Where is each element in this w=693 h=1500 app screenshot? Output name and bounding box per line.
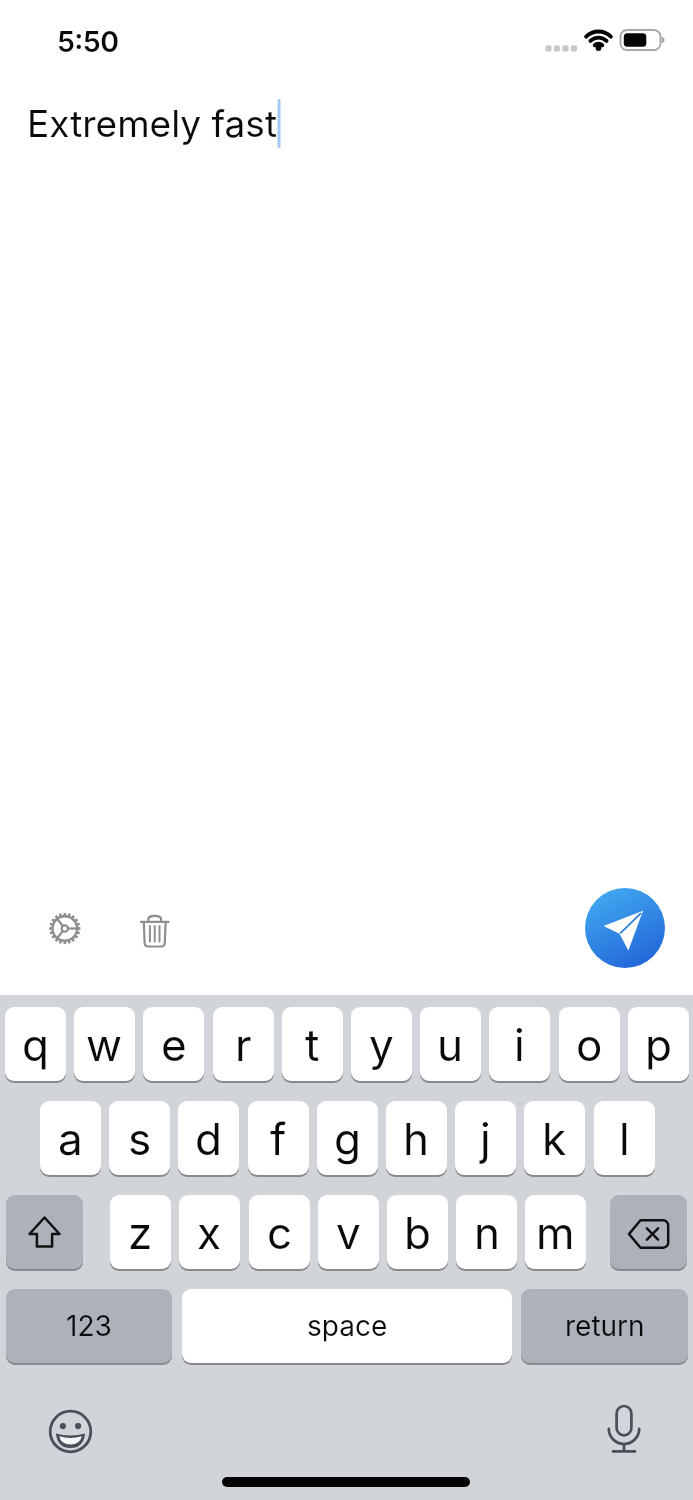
staticText: q bbox=[22, 1018, 49, 1071]
button[interactable]: r bbox=[213, 1007, 274, 1081]
button[interactable]: i bbox=[489, 1007, 550, 1081]
button[interactable] bbox=[599, 1406, 649, 1456]
button[interactable]: t bbox=[282, 1007, 343, 1081]
staticText: s bbox=[128, 1112, 152, 1165]
staticText: Extremely fast bbox=[27, 101, 278, 146]
staticText: r bbox=[235, 1018, 252, 1071]
button[interactable]: return bbox=[521, 1289, 688, 1363]
staticText: e bbox=[161, 1018, 187, 1071]
button[interactable]: d bbox=[178, 1101, 239, 1175]
button[interactable] bbox=[44, 907, 86, 949]
button[interactable]: o bbox=[559, 1007, 620, 1081]
staticText: k bbox=[542, 1112, 567, 1165]
staticText: v bbox=[336, 1206, 361, 1259]
staticText: c bbox=[267, 1206, 293, 1259]
staticText: y bbox=[369, 1018, 394, 1071]
staticText: d bbox=[195, 1112, 222, 1165]
button[interactable] bbox=[6, 1195, 83, 1269]
button[interactable] bbox=[585, 888, 665, 968]
button[interactable]: w bbox=[74, 1007, 135, 1081]
button[interactable]: k bbox=[524, 1101, 585, 1175]
staticText: l bbox=[619, 1112, 630, 1165]
button[interactable]: p bbox=[628, 1007, 689, 1081]
staticText: i bbox=[514, 1018, 525, 1071]
button[interactable]: q bbox=[5, 1007, 66, 1081]
staticText: h bbox=[403, 1112, 430, 1165]
staticText: return bbox=[565, 1309, 645, 1343]
button[interactable]: x bbox=[179, 1195, 240, 1269]
staticText: z bbox=[128, 1206, 153, 1259]
button[interactable] bbox=[46, 1407, 96, 1457]
staticText: b bbox=[404, 1206, 431, 1259]
button[interactable]: m bbox=[525, 1195, 586, 1269]
button[interactable]: g bbox=[317, 1101, 378, 1175]
staticText: f bbox=[270, 1112, 287, 1165]
staticText: w bbox=[86, 1018, 123, 1071]
button[interactable]: a bbox=[40, 1101, 101, 1175]
staticText: p bbox=[645, 1018, 672, 1071]
button[interactable]: c bbox=[249, 1195, 310, 1269]
button[interactable]: z bbox=[110, 1195, 171, 1269]
staticText: a bbox=[58, 1112, 83, 1165]
staticText: g bbox=[334, 1112, 361, 1165]
staticText: 5:50 bbox=[57, 24, 119, 58]
staticText: u bbox=[437, 1018, 464, 1071]
button[interactable]: 123 bbox=[6, 1289, 172, 1363]
staticText: m bbox=[536, 1206, 575, 1259]
button[interactable]: l bbox=[594, 1101, 655, 1175]
staticText: space bbox=[307, 1309, 388, 1343]
button[interactable]: s bbox=[109, 1101, 170, 1175]
staticText: t bbox=[305, 1018, 320, 1071]
button[interactable]: v bbox=[318, 1195, 379, 1269]
staticText: n bbox=[474, 1206, 500, 1259]
staticText: o bbox=[576, 1018, 603, 1071]
staticText: 123 bbox=[66, 1309, 112, 1343]
button[interactable]: f bbox=[248, 1101, 309, 1175]
button[interactable]: e bbox=[143, 1007, 204, 1081]
button[interactable] bbox=[610, 1195, 687, 1269]
button[interactable] bbox=[134, 907, 176, 949]
button[interactable]: u bbox=[420, 1007, 481, 1081]
button[interactable]: n bbox=[456, 1195, 517, 1269]
button[interactable]: b bbox=[387, 1195, 448, 1269]
button[interactable]: h bbox=[386, 1101, 447, 1175]
staticText: x bbox=[197, 1206, 222, 1259]
button[interactable]: space bbox=[182, 1289, 512, 1363]
button[interactable]: y bbox=[351, 1007, 412, 1081]
button[interactable]: j bbox=[455, 1101, 516, 1175]
staticText: j bbox=[480, 1112, 491, 1165]
